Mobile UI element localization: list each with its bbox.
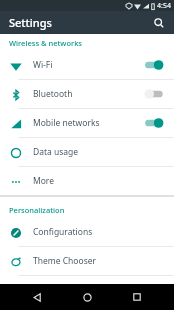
button[interactable]: Back	[24, 284, 50, 310]
button[interactable]: Recent apps	[124, 284, 150, 310]
staticText: Personalization	[9, 205, 65, 215]
staticText: Configurations	[33, 226, 166, 238]
button[interactable]: Toggle on	[144, 115, 166, 131]
button[interactable]: Bluetooth	[0, 80, 174, 108]
button[interactable]: Toggle on	[144, 57, 166, 73]
button[interactable]: Search	[150, 14, 168, 32]
staticText: More	[33, 175, 166, 187]
staticText: Wi-Fi	[33, 59, 144, 71]
staticText: Settings	[9, 15, 52, 30]
button[interactable]: Mobile networks	[0, 109, 174, 137]
button[interactable]: Theme Chooser	[0, 247, 174, 275]
staticText: Bluetooth	[33, 88, 144, 100]
staticText: Mobile networks	[33, 117, 144, 129]
button[interactable]: Toggle off	[144, 86, 166, 102]
button[interactable]: Home	[74, 284, 100, 310]
button[interactable]: Data usage	[0, 138, 174, 166]
button[interactable]: Wi-Fi	[0, 51, 174, 79]
staticText: Theme Chooser	[33, 255, 166, 267]
staticText: Wireless & networks	[9, 38, 82, 48]
button[interactable]: More	[0, 167, 174, 195]
staticText: 4:54	[157, 1, 171, 11]
button[interactable]: Configurations	[0, 218, 174, 246]
staticText: Data usage	[33, 146, 166, 158]
